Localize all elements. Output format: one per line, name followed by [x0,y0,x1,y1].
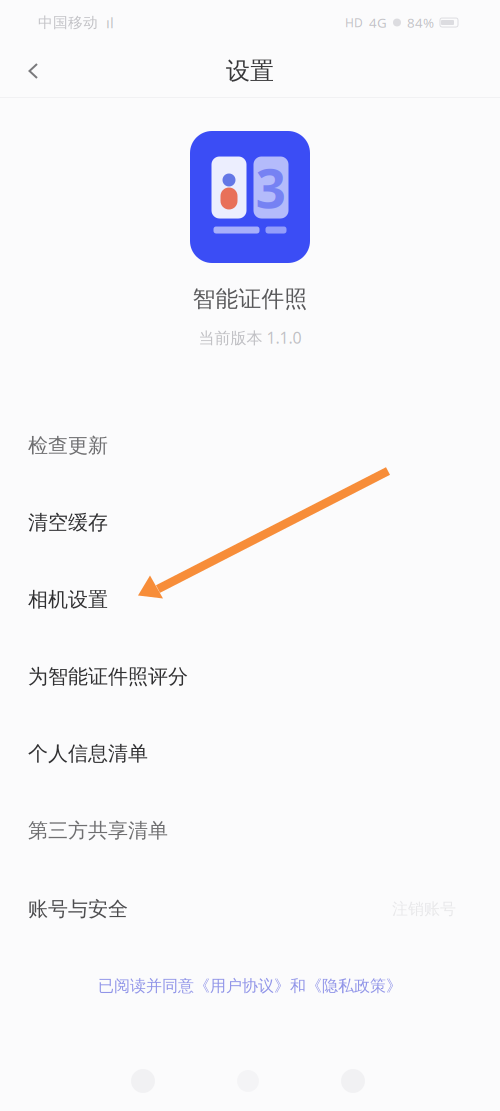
staticText: 为智能证件照评分 [28,664,188,689]
staticText: 第三方共享清单 [28,818,168,843]
staticText: 中国移动 [38,13,98,31]
button[interactable]: 已阅读并同意《用户协议》和《隐私政策》 [0,971,500,1001]
button[interactable]: Back [0,45,66,97]
staticText: ıl [98,13,114,32]
staticText: 4G [369,14,387,31]
staticText: 智能证件照 [192,285,307,313]
staticText: 84% [407,14,434,31]
staticText: 3 [255,152,286,223]
staticText: 设置 [226,56,274,86]
button[interactable]: 账号与安全 [0,882,500,936]
staticText: 个人信息清单 [28,741,148,766]
staticText: 已阅读并同意《用户协议》和《隐私政策》 [98,976,402,996]
staticText: 账号与安全 [28,897,128,921]
button[interactable]: 个人信息清单 [0,715,500,792]
staticText: HD [345,14,363,30]
staticText: 清空缓存 [28,510,108,535]
button[interactable]: 为智能证件照评分 [0,638,500,715]
button[interactable]: 第三方共享清单 [0,792,500,869]
staticText: 当前版本 1.1.0 [198,327,301,348]
button[interactable]: 清空缓存 [0,484,500,561]
staticText: 检查更新 [28,433,108,458]
staticText: 注销账号 [392,899,456,919]
button[interactable]: 检查更新 [0,407,500,484]
button[interactable]: 相机设置 [0,561,500,638]
staticText: 相机设置 [28,587,108,612]
